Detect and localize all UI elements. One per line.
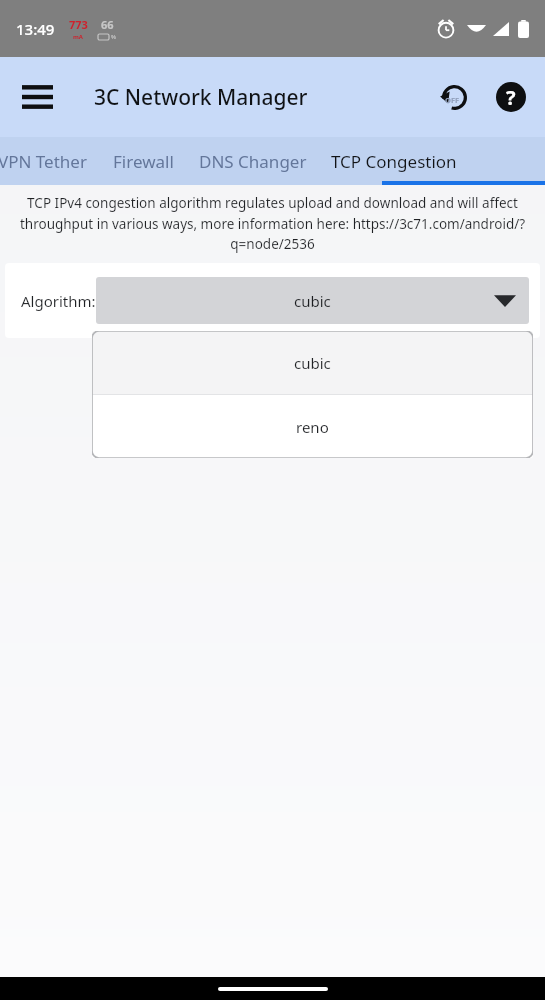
- staticText: TCP Congestion: [331, 150, 457, 173]
- staticText: OFF: [445, 95, 460, 105]
- staticText: 3C Network Manager: [94, 83, 308, 112]
- staticText: 773: [69, 17, 88, 32]
- staticText: 66: [101, 17, 114, 32]
- staticText: VPN Tether: [0, 150, 87, 173]
- button[interactable]: Firewall: [113, 137, 174, 185]
- staticText: cubic: [294, 353, 331, 373]
- staticText: Algorithm:: [21, 291, 96, 311]
- button[interactable]: reno: [92, 395, 533, 458]
- staticText: ?: [506, 84, 516, 111]
- staticText: mA: [73, 33, 84, 41]
- staticText: 13:49: [16, 19, 55, 39]
- staticText: DNS Changer: [199, 150, 307, 173]
- button[interactable]: VPN Tether: [0, 137, 87, 185]
- button[interactable]: TCP Congestion: [331, 137, 457, 185]
- button[interactable]: cubic: [96, 277, 529, 324]
- button[interactable]: Help: [486, 72, 536, 122]
- staticText: %: [111, 33, 116, 41]
- button[interactable]: Restore defaults: [429, 72, 479, 122]
- button[interactable]: Open navigation drawer: [11, 71, 63, 123]
- staticText: TCP IPv4 congestion algorithm regulates …: [13, 194, 532, 253]
- staticText: cubic: [294, 291, 331, 311]
- staticText: Firewall: [113, 150, 174, 173]
- staticText: reno: [296, 417, 329, 437]
- button[interactable]: cubic: [92, 331, 533, 394]
- button[interactable]: DNS Changer: [199, 137, 307, 185]
